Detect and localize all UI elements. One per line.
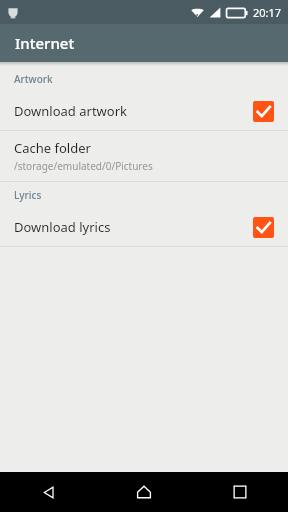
- staticText: Download lyrics: [14, 218, 253, 236]
- button[interactable]: Recents: [192, 472, 288, 512]
- button[interactable]: Home: [96, 472, 192, 512]
- button[interactable]: Back: [0, 472, 96, 512]
- button[interactable]: Toggle: [253, 101, 274, 122]
- button[interactable]: Toggle: [253, 217, 274, 238]
- staticText: Download artwork: [14, 102, 253, 120]
- button[interactable]: Download artwork: [0, 92, 288, 130]
- staticText: Cache folder: [14, 139, 91, 157]
- staticText: 20:17: [253, 5, 282, 20]
- button[interactable]: Cache folder: [0, 131, 288, 181]
- staticText: Artwork: [14, 72, 53, 86]
- staticText: Lyrics: [14, 188, 42, 202]
- button[interactable]: Download lyrics: [0, 208, 288, 246]
- staticText: Internet: [15, 33, 75, 53]
- staticText: /storage/emulated/0/Pictures: [14, 159, 153, 173]
